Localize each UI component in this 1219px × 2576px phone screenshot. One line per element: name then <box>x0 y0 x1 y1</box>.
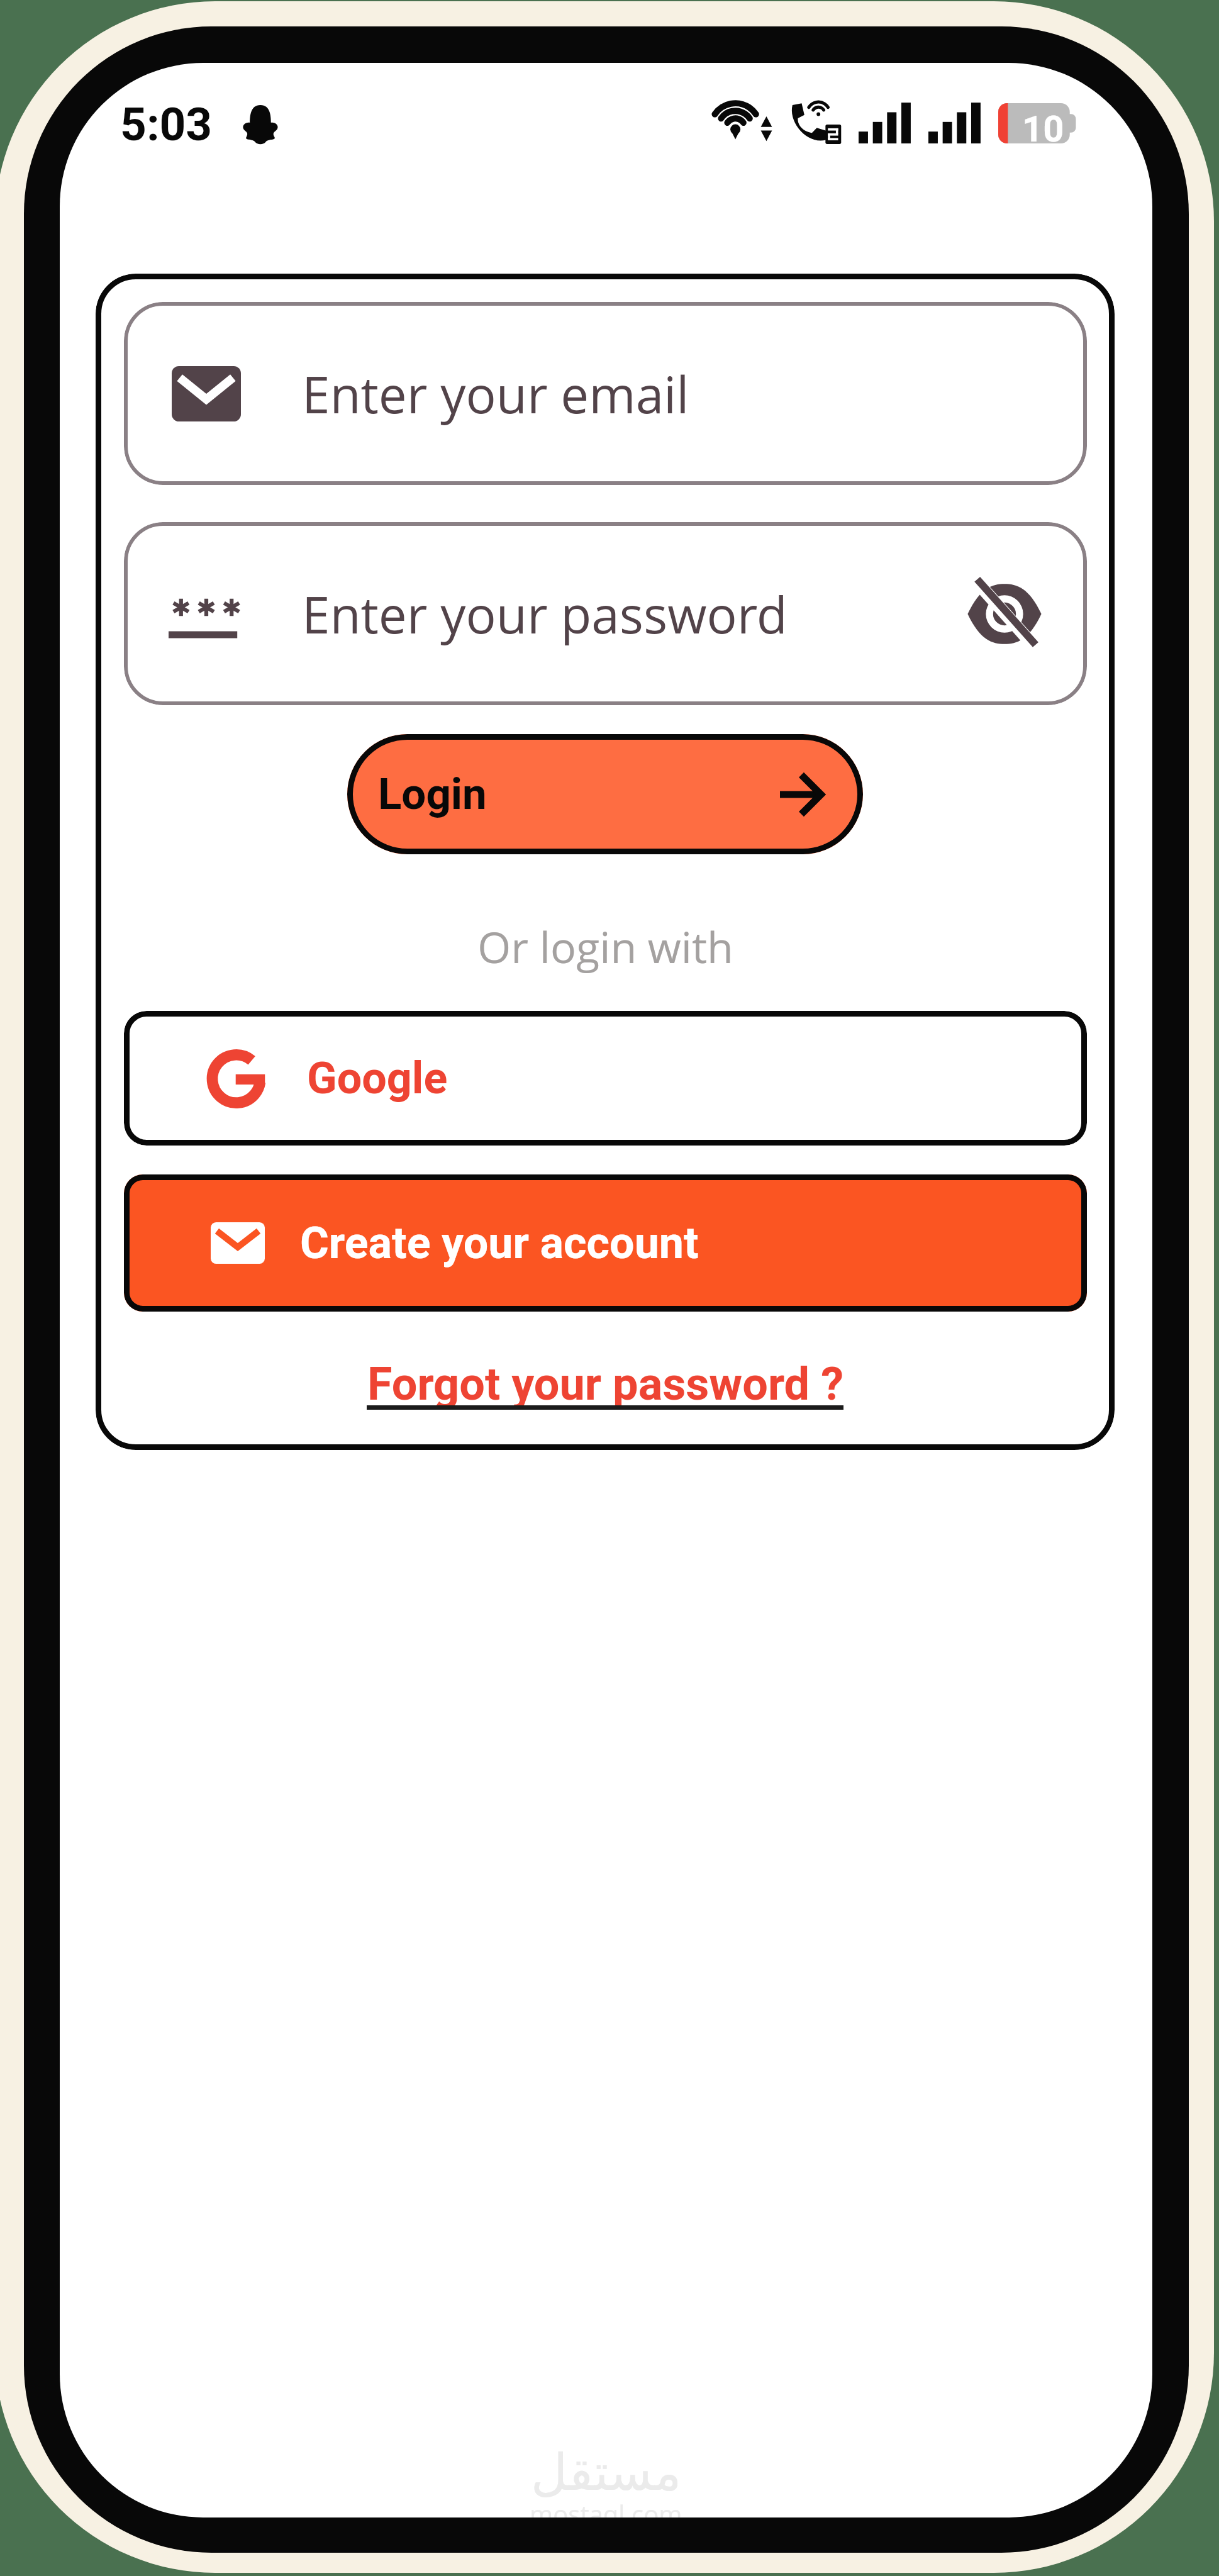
staticText: Create your account <box>300 1217 699 1269</box>
staticText: Login <box>378 769 487 820</box>
staticText: mostaql.com <box>530 2497 682 2517</box>
button[interactable]: Enter your password <box>124 522 1087 705</box>
staticText: Enter your email <box>302 359 689 428</box>
button[interactable]: Enter your email <box>124 302 1087 485</box>
staticText: 10 <box>1022 108 1064 150</box>
staticText: 5:03 <box>120 98 213 152</box>
button[interactable]: Create your account <box>124 1174 1087 1312</box>
button[interactable]: Forgot your password ? <box>367 1358 843 1410</box>
button[interactable]: Login <box>347 734 863 854</box>
staticText: Forgot your password ? <box>367 1358 843 1410</box>
button[interactable]: Show password <box>951 560 1058 667</box>
staticText: Google <box>307 1052 448 1104</box>
staticText: مستقل <box>531 2443 682 2502</box>
staticText: Or login with <box>477 917 733 976</box>
button[interactable]: Google <box>124 1011 1087 1146</box>
staticText: Enter your password <box>302 579 788 648</box>
